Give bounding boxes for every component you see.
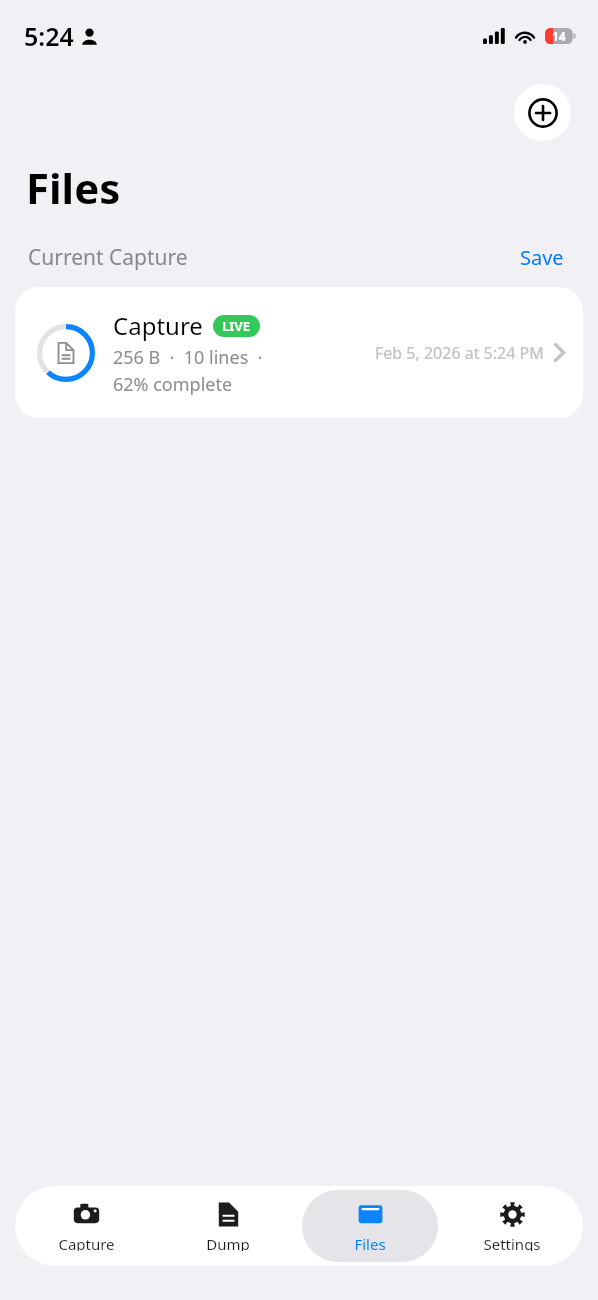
button[interactable]: Dump [160, 1190, 296, 1262]
button[interactable]: Add capture [514, 84, 571, 141]
staticText: Settings [483, 1234, 541, 1251]
staticText: Files [26, 159, 121, 216]
staticText: 62% complete [113, 372, 233, 397]
staticText: Capture [58, 1234, 115, 1251]
button[interactable]: Capture [18, 1190, 154, 1262]
button[interactable]: Save [516, 242, 568, 273]
staticText: 256 B · 10 lines · [113, 345, 263, 370]
button[interactable]: Capture [15, 287, 583, 418]
staticText: 5:24 [24, 19, 74, 53]
button[interactable]: Files [302, 1190, 438, 1262]
staticText: Save [520, 244, 564, 271]
staticText: Files [354, 1234, 386, 1251]
staticText: 14 [552, 28, 566, 44]
staticText: Dump [206, 1234, 250, 1251]
staticText: LIVE [222, 317, 251, 335]
staticText: Feb 5, 2026 at 5:24 PM [375, 342, 544, 364]
button[interactable]: Settings [444, 1190, 580, 1262]
staticText: Capture [113, 309, 203, 342]
staticText: Current Capture [28, 243, 188, 272]
